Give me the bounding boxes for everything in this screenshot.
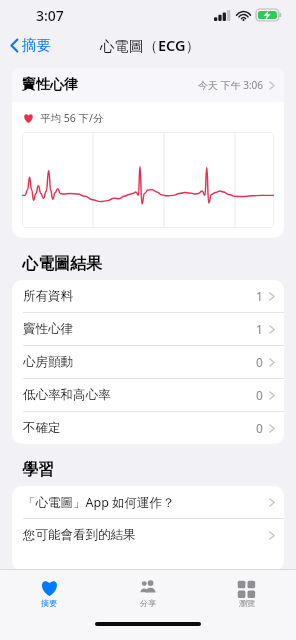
- staticText: 分享: [140, 598, 156, 608]
- staticText: 1: [256, 321, 263, 337]
- staticText: 0: [256, 420, 263, 436]
- button[interactable]: 低心率和高心率: [12, 379, 284, 411]
- button[interactable]: 摘要: [0, 570, 98, 616]
- button[interactable]: 心房顫動: [12, 346, 284, 378]
- staticText: 瀏覽: [239, 598, 255, 608]
- button[interactable]: 分享: [98, 570, 197, 616]
- staticText: 心電圖結果: [22, 254, 102, 274]
- staticText: 低心率和高心率: [23, 387, 111, 403]
- button[interactable]: 所有資料: [12, 280, 284, 312]
- staticText: 您可能會看到的結果: [23, 527, 136, 543]
- staticText: 摘要: [22, 36, 51, 54]
- staticText: 竇性心律: [23, 321, 73, 337]
- staticText: 心電圖（ECG）: [100, 35, 201, 55]
- button[interactable]: 「心電圖」App 如何運作？: [12, 486, 284, 518]
- staticText: 學習: [22, 460, 54, 480]
- staticText: 摘要: [41, 598, 57, 608]
- staticText: 3:07: [36, 6, 64, 25]
- staticText: 今天 下午 3:06: [198, 78, 264, 92]
- staticText: 不確定: [23, 420, 61, 436]
- button[interactable]: 竇性心律: [12, 68, 284, 238]
- staticText: 平均 56 下/分: [40, 111, 104, 125]
- button[interactable]: 不確定: [12, 412, 284, 444]
- button[interactable]: 瀏覽: [197, 570, 296, 616]
- button[interactable]: 您可能會看到的結果: [12, 519, 284, 551]
- staticText: 所有資料: [23, 288, 73, 304]
- staticText: 「心電圖」App 如何運作？: [23, 494, 175, 511]
- staticText: 心房顫動: [23, 354, 73, 370]
- button[interactable]: 摘要: [6, 33, 55, 57]
- staticText: 0: [256, 387, 263, 403]
- staticText: 1: [256, 288, 263, 304]
- staticText: 0: [256, 354, 263, 370]
- staticText: 竇性心律: [22, 76, 78, 94]
- button[interactable]: 竇性心律: [12, 313, 284, 345]
